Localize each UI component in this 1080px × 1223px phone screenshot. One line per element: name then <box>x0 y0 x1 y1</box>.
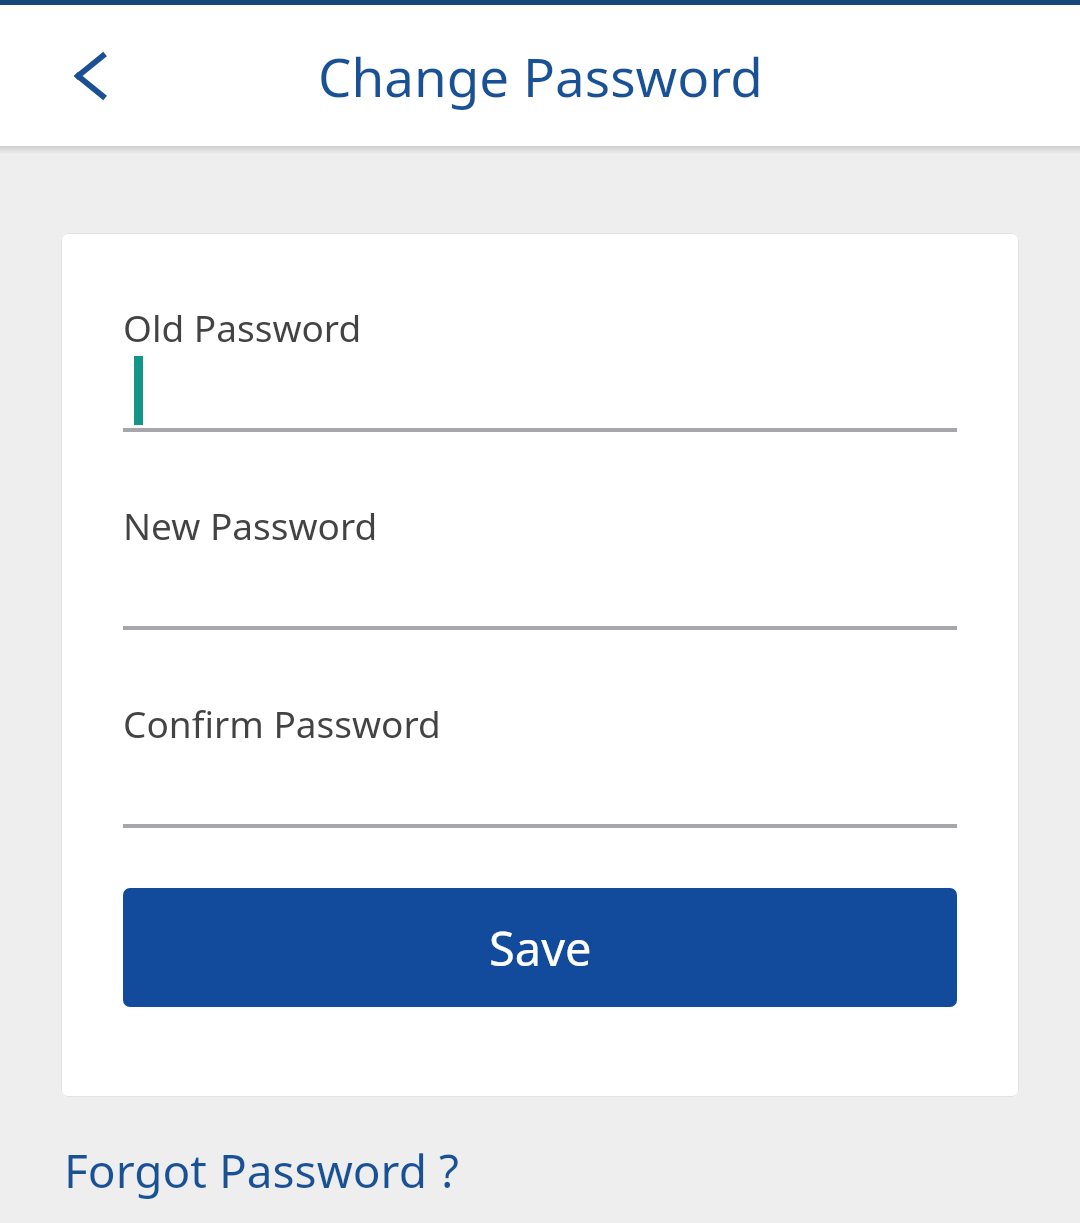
button[interactable]: Old Password <box>123 302 957 432</box>
staticText: Change Password <box>318 40 763 112</box>
staticText: Old Password <box>123 302 362 352</box>
staticText: Save <box>489 916 592 980</box>
button[interactable]: New Password <box>123 500 957 630</box>
button[interactable]: Forgot Password ? <box>62 1135 461 1206</box>
staticText: Forgot Password ? <box>64 1139 459 1202</box>
button[interactable]: Confirm Password <box>123 698 957 828</box>
button[interactable]: Back <box>44 30 136 122</box>
staticText: New Password <box>123 500 378 550</box>
staticText: Confirm Password <box>123 698 441 748</box>
button[interactable]: Save <box>123 888 957 1007</box>
